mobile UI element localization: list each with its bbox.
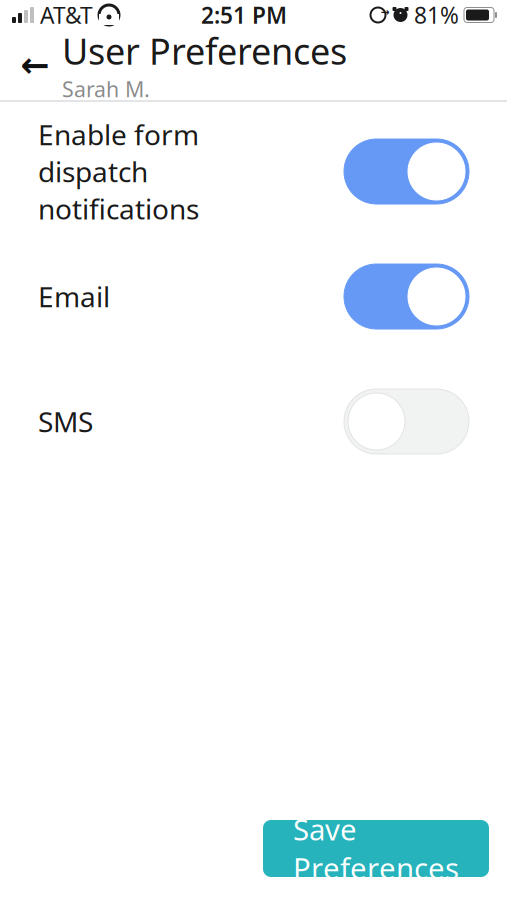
button[interactable]: Back [12, 42, 58, 88]
staticText: AT&T [40, 0, 93, 30]
staticText: 81% [414, 0, 459, 30]
staticText: Sarah M. [62, 75, 150, 103]
staticText: 2:51 PM [201, 0, 287, 30]
staticText: SMS [38, 403, 93, 440]
button[interactable]: Enable form dispatch notifications [0, 109, 507, 234]
staticText: Enable form dispatch notifications [38, 116, 199, 227]
staticText: Save Preferences [293, 809, 459, 887]
staticText: → [380, 6, 389, 18]
button[interactable]: Save Preferences [263, 820, 489, 877]
button[interactable]: SMS [0, 359, 507, 484]
staticText: User Preferences [62, 27, 347, 75]
staticText: Email [38, 278, 110, 315]
staticText: ← [20, 45, 49, 85]
button[interactable]: Email [0, 234, 507, 359]
